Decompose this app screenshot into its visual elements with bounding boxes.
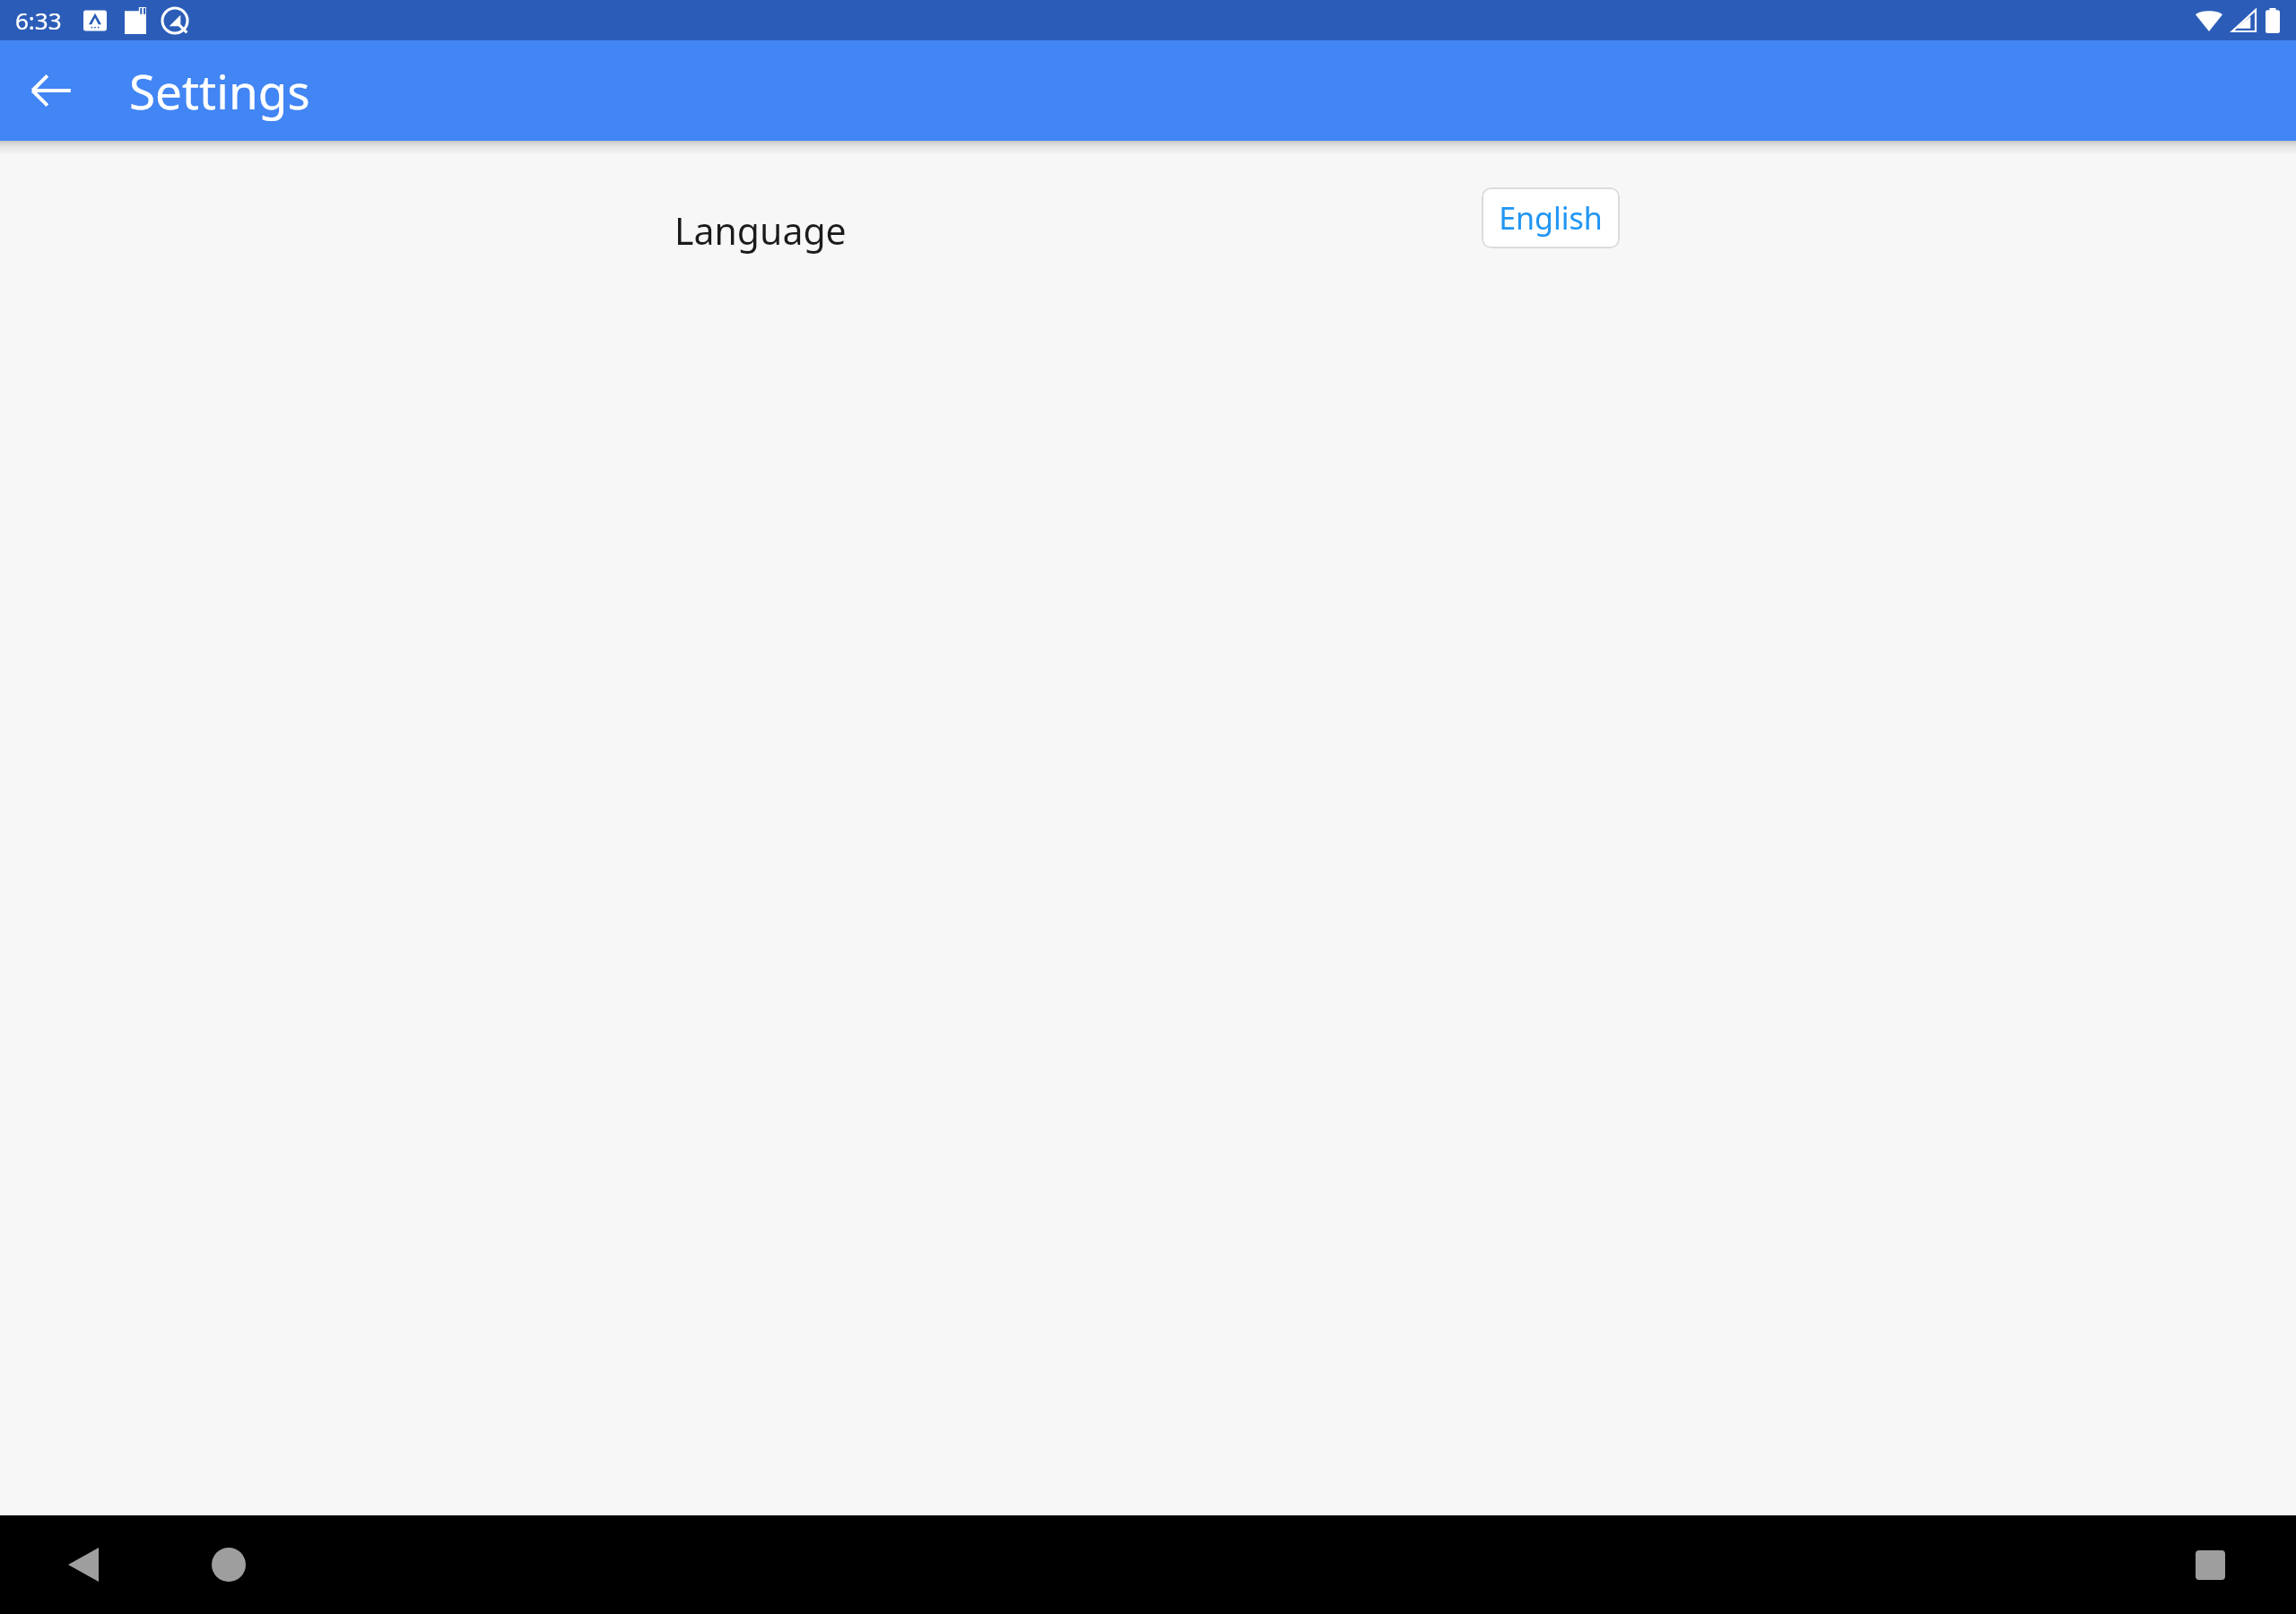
button[interactable]: Home xyxy=(175,1515,283,1614)
staticText: Settings xyxy=(129,58,310,123)
button[interactable]: Back xyxy=(30,1515,137,1614)
staticText: 6:33 xyxy=(15,4,62,36)
staticText: Language xyxy=(674,205,847,256)
staticText: English xyxy=(1499,197,1603,239)
button[interactable]: English xyxy=(1482,187,1620,248)
button[interactable]: Recent apps xyxy=(2156,1515,2264,1614)
button[interactable]: Navigate up xyxy=(15,55,87,126)
